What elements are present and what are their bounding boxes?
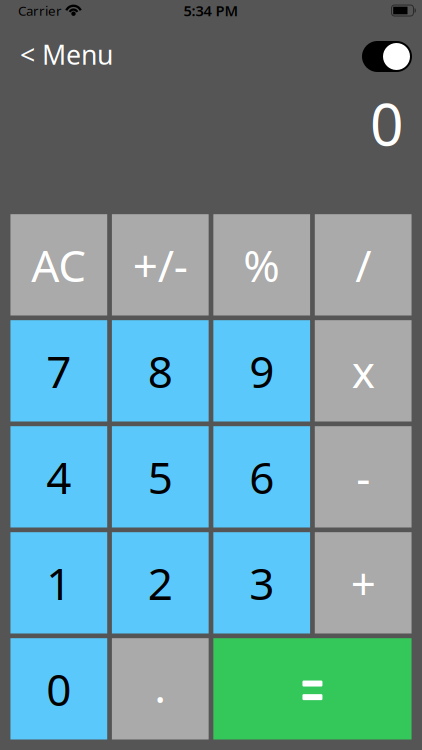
button[interactable]: - bbox=[315, 426, 412, 527]
button[interactable]: 9 bbox=[213, 320, 310, 421]
button[interactable]: 4 bbox=[10, 426, 107, 527]
staticText: 8 bbox=[148, 342, 173, 400]
button[interactable]: 1 bbox=[10, 532, 107, 633]
button[interactable]: 8 bbox=[112, 320, 209, 421]
button[interactable]: < Menu bbox=[20, 39, 113, 74]
button[interactable]: AC bbox=[10, 214, 107, 315]
staticText: . bbox=[154, 657, 166, 715]
staticText: 6 bbox=[249, 448, 274, 506]
staticText: < Menu bbox=[20, 37, 113, 72]
button[interactable]: x bbox=[315, 320, 412, 421]
button[interactable]: 2 bbox=[112, 532, 209, 633]
button[interactable]: Toggle bbox=[362, 41, 412, 72]
staticText: + bbox=[351, 554, 376, 612]
button[interactable]: 3 bbox=[213, 532, 310, 633]
button[interactable]: + bbox=[315, 532, 412, 633]
staticText: / bbox=[355, 236, 371, 294]
button[interactable]: +/- bbox=[112, 214, 209, 315]
button[interactable]: 6 bbox=[213, 426, 310, 527]
staticText: 4 bbox=[46, 448, 71, 506]
staticText: 0 bbox=[46, 660, 71, 718]
staticText: 5:34 PM bbox=[183, 1, 238, 20]
button[interactable]: % bbox=[213, 214, 310, 315]
staticText: 2 bbox=[148, 554, 173, 612]
staticText: 5 bbox=[148, 448, 173, 506]
staticText: 0 bbox=[370, 84, 404, 162]
staticText: 3 bbox=[249, 554, 274, 612]
staticText: - bbox=[356, 448, 370, 506]
button[interactable]: 7 bbox=[10, 320, 107, 421]
staticText: 1 bbox=[46, 554, 71, 612]
staticText: % bbox=[243, 236, 280, 294]
staticText: +/- bbox=[133, 236, 188, 294]
button[interactable]: 0 bbox=[10, 638, 107, 739]
button[interactable]: / bbox=[315, 214, 412, 315]
staticText: AC bbox=[31, 236, 86, 294]
staticText: 7 bbox=[46, 342, 71, 400]
button[interactable] bbox=[213, 638, 412, 739]
staticText: Carrier bbox=[18, 2, 62, 19]
staticText: x bbox=[352, 342, 375, 400]
staticText: 9 bbox=[249, 342, 274, 400]
button[interactable]: 5 bbox=[112, 426, 209, 527]
button[interactable]: . bbox=[112, 638, 209, 739]
